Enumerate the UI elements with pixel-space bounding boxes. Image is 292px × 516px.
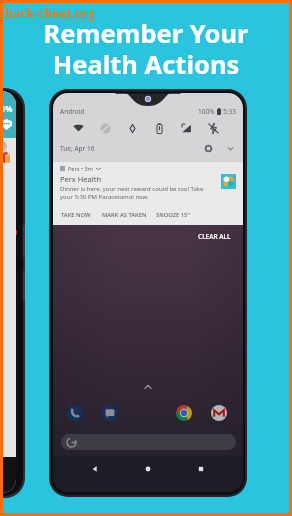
button[interactable]: Search: [61, 434, 236, 450]
button[interactable]: TAKE NOW: [61, 211, 91, 219]
staticText: Remember Your Health Actions: [0, 16, 292, 81]
staticText: CLEAR ALL: [198, 232, 231, 241]
button[interactable]: Back: [87, 461, 103, 477]
button[interactable]: Gmail: [210, 404, 228, 422]
staticText: 53%: [0, 103, 13, 114]
staticText: 5:33: [223, 107, 236, 116]
button[interactable]: Expand: [225, 143, 236, 154]
staticText: Perx Health: [60, 174, 102, 184]
button[interactable]: Chrome: [175, 404, 193, 422]
button[interactable]: Settings: [203, 143, 214, 154]
button[interactable]: Phone: [66, 404, 84, 422]
button[interactable]: MARK AS TAKEN: [102, 211, 147, 219]
button[interactable]: Quick setting: [70, 120, 86, 136]
staticText: Android: [60, 107, 85, 116]
button[interactable]: Quick setting: [151, 120, 167, 136]
button[interactable]: Quick setting: [124, 120, 140, 136]
staticText: 100%: [198, 107, 215, 116]
staticText: hack-cheat.org: [5, 5, 96, 21]
staticText: Dinner is here, your next reward could b…: [60, 185, 217, 201]
staticText: Perx • 3m: [68, 165, 93, 172]
button[interactable]: CLEAR ALL: [198, 232, 231, 241]
staticText: Tue, Apr 16: [60, 144, 95, 153]
button[interactable]: Messages: [101, 404, 119, 422]
button[interactable]: Quick setting: [178, 120, 194, 136]
button[interactable]: Recent apps: [193, 461, 209, 477]
button[interactable]: SNOOZE 15": [156, 211, 190, 219]
button[interactable]: Quick setting: [205, 120, 221, 136]
button[interactable]: Quick setting: [97, 120, 113, 136]
button[interactable]: Home: [140, 461, 156, 477]
